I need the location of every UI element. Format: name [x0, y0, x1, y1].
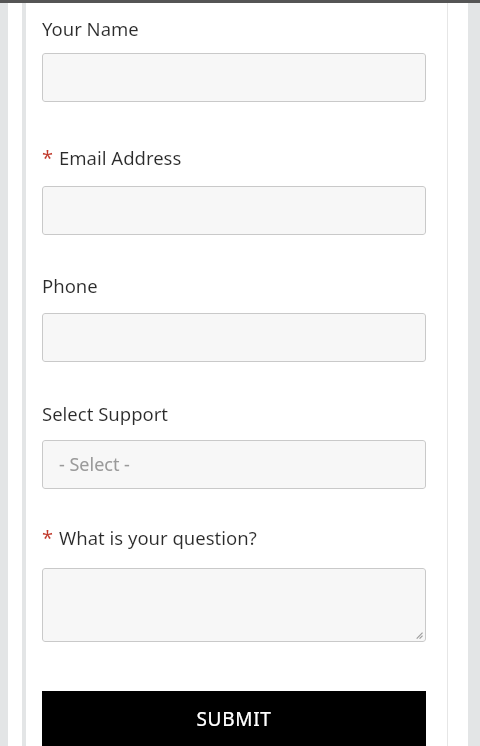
staticText: Phone: [42, 273, 98, 298]
staticText: What is your question?: [59, 525, 257, 550]
staticText: Your Name: [42, 16, 139, 41]
button[interactable]: - Select -: [42, 440, 426, 489]
staticText: *: [42, 144, 54, 171]
staticText: - Select -: [59, 452, 130, 477]
button[interactable]: SUBMIT: [42, 691, 426, 746]
button[interactable]: [42, 313, 426, 362]
button[interactable]: [42, 568, 426, 642]
button[interactable]: [42, 186, 426, 235]
staticText: *: [42, 524, 54, 551]
button[interactable]: [42, 53, 426, 102]
staticText: Select Support: [42, 401, 169, 426]
staticText: Email Address: [59, 145, 182, 170]
staticText: SUBMIT: [196, 706, 272, 732]
